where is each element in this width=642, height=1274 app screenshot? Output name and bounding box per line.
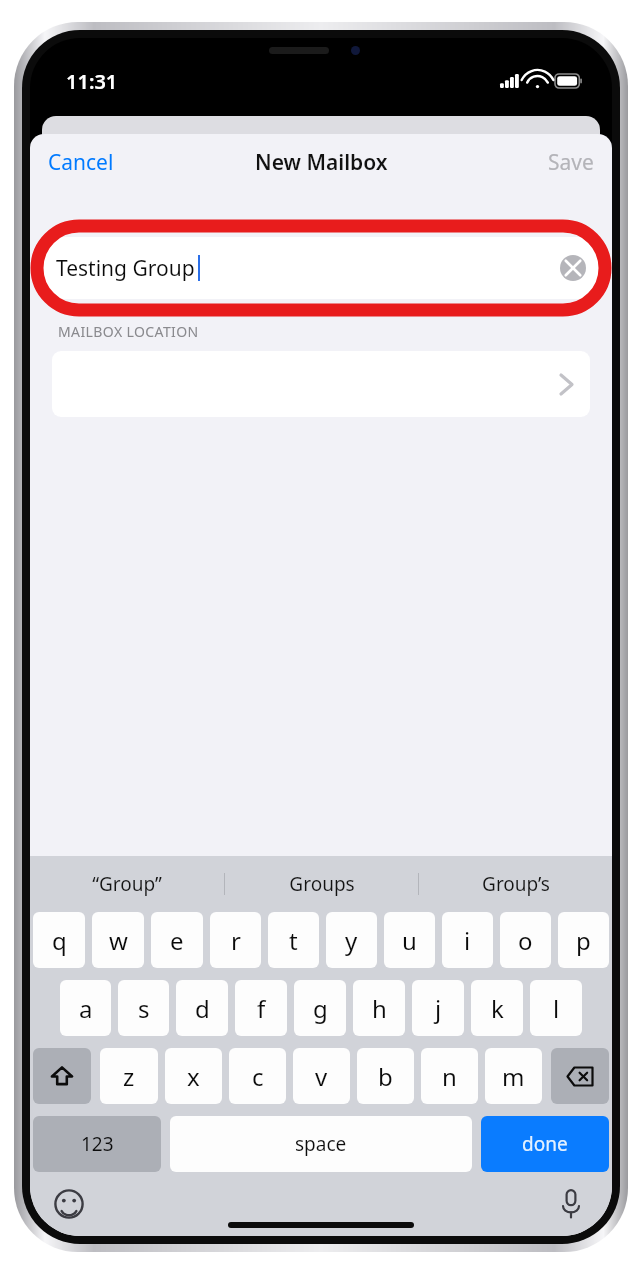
staticText: h — [372, 992, 387, 1025]
button[interactable]: f — [235, 980, 287, 1036]
staticText: done — [522, 1131, 568, 1157]
button[interactable]: c — [229, 1048, 286, 1104]
staticText: p — [576, 924, 591, 957]
button[interactable]: p — [558, 912, 609, 968]
staticText: q — [52, 924, 67, 957]
staticText: Testing Group — [56, 254, 195, 283]
staticText: Group’s — [482, 871, 550, 897]
button[interactable]: o — [500, 912, 551, 968]
staticText: y — [345, 924, 358, 957]
button[interactable]: e — [151, 912, 203, 968]
staticText: n — [442, 1060, 457, 1093]
button[interactable]: Dictate — [552, 1185, 590, 1223]
staticText: x — [187, 1060, 200, 1093]
staticText: t — [289, 924, 298, 957]
button[interactable]: a — [60, 980, 111, 1036]
button[interactable]: v — [293, 1048, 350, 1104]
button[interactable]: done — [481, 1116, 609, 1172]
staticText: w — [109, 924, 128, 957]
button[interactable]: Group’s — [419, 856, 612, 912]
staticText: m — [502, 1060, 525, 1093]
button[interactable]: Emoji — [50, 1185, 88, 1223]
button[interactable]: z — [100, 1048, 158, 1104]
button[interactable]: g — [294, 980, 346, 1036]
button[interactable]: Backspace — [551, 1048, 609, 1104]
staticText: New Mailbox — [255, 148, 388, 177]
button[interactable]: space — [170, 1116, 472, 1172]
button[interactable]: Save — [540, 142, 602, 183]
staticText: “Group” — [92, 871, 162, 897]
staticText: g — [313, 992, 328, 1025]
button[interactable]: n — [421, 1048, 478, 1104]
staticText: Cancel — [48, 148, 114, 177]
staticText: j — [435, 992, 442, 1025]
staticText: k — [491, 992, 504, 1025]
staticText: o — [518, 924, 533, 957]
staticText: u — [402, 924, 417, 957]
staticText: e — [170, 924, 184, 957]
button[interactable] — [52, 351, 590, 417]
button[interactable]: d — [176, 980, 228, 1036]
button[interactable]: “Group” — [30, 856, 224, 912]
staticText: l — [553, 992, 560, 1025]
button[interactable]: k — [471, 980, 523, 1036]
staticText: s — [138, 992, 150, 1025]
staticText: i — [464, 924, 471, 957]
button[interactable]: i — [442, 912, 493, 968]
button[interactable]: Clear text — [560, 255, 586, 281]
button[interactable]: Shift — [33, 1048, 91, 1104]
button[interactable]: x — [165, 1048, 222, 1104]
button[interactable]: Groups — [225, 856, 418, 912]
button[interactable]: h — [353, 980, 405, 1036]
staticText: 123 — [81, 1131, 114, 1157]
staticText: Groups — [289, 871, 355, 897]
button[interactable]: r — [210, 912, 261, 968]
staticText: z — [123, 1060, 135, 1093]
button[interactable]: t — [268, 912, 319, 968]
button[interactable]: q — [33, 912, 85, 968]
button[interactable]: u — [384, 912, 435, 968]
staticText: f — [257, 992, 266, 1025]
staticText: Save — [548, 148, 594, 177]
staticText: MAILBOX LOCATION — [58, 322, 199, 341]
staticText: b — [378, 1060, 393, 1093]
staticText: r — [231, 924, 241, 957]
button[interactable]: w — [92, 912, 144, 968]
button[interactable]: Testing Group — [40, 237, 602, 299]
staticText: 11:31 — [66, 68, 118, 95]
staticText: space — [295, 1131, 347, 1157]
button[interactable]: s — [118, 980, 169, 1036]
staticText: d — [195, 992, 210, 1025]
staticText: a — [79, 992, 93, 1025]
button[interactable]: y — [326, 912, 377, 968]
button[interactable]: m — [485, 1048, 542, 1104]
button[interactable]: 123 — [33, 1116, 161, 1172]
staticText: c — [252, 1060, 264, 1093]
button[interactable]: j — [412, 980, 464, 1036]
button[interactable]: Cancel — [40, 142, 122, 183]
button[interactable]: l — [530, 980, 582, 1036]
button[interactable]: b — [357, 1048, 414, 1104]
staticText: v — [315, 1060, 328, 1093]
